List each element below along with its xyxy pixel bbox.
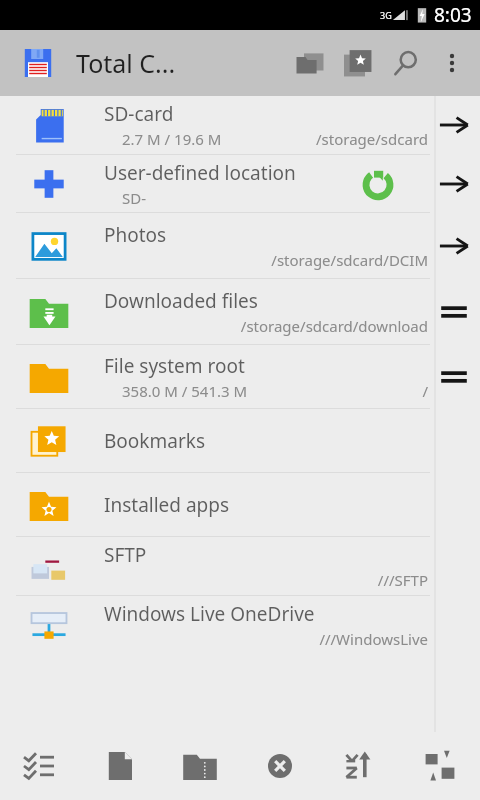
staticText: SD- (122, 188, 147, 208)
staticText: /storage/sdcard (316, 129, 428, 149)
staticText: Total C... (76, 46, 176, 80)
button[interactable]: Windows Live OneDrive (0, 596, 480, 654)
button[interactable]: More options (430, 41, 474, 85)
button[interactable]: Select (0, 732, 80, 800)
staticText: File system root (104, 353, 245, 379)
staticText: SFTP (104, 542, 147, 568)
button[interactable]: Sort (320, 732, 400, 800)
button[interactable]: Folders (286, 39, 334, 87)
staticText: 8:03 (434, 2, 472, 28)
staticText: Photos (104, 222, 167, 248)
button[interactable]: Installed apps (0, 473, 480, 536)
staticText: 3G (380, 9, 392, 21)
staticText: 2.7 M / 19.6 M (122, 129, 222, 149)
staticText: /storage/sdcard/DCIM (271, 250, 428, 270)
staticText: / (422, 381, 428, 401)
staticText: SD-card (104, 101, 174, 127)
staticText: Downloaded files (104, 288, 258, 314)
staticText: Bookmarks (104, 428, 206, 454)
button[interactable]: File system root (0, 345, 480, 408)
button[interactable]: User-defined location (0, 155, 480, 212)
staticText: 358.0 M / 541.3 M (122, 381, 248, 401)
staticText: ///SFTP (377, 570, 428, 590)
button[interactable]: Close (240, 732, 320, 800)
button[interactable]: Transfer (400, 732, 480, 800)
button[interactable]: Zip folder (160, 732, 240, 800)
staticText: ///WindowsLive (319, 629, 428, 649)
staticText: User-defined location (104, 160, 296, 186)
button[interactable]: Photos (0, 213, 480, 278)
button[interactable]: SFTP (0, 537, 480, 595)
button[interactable]: SD-card (0, 96, 480, 154)
staticText: Windows Live OneDrive (104, 601, 315, 627)
staticText: /storage/sdcard/download (240, 316, 428, 336)
staticText: Installed apps (104, 492, 230, 518)
button[interactable]: Bookmarks (0, 409, 480, 472)
button[interactable]: Bookmarks (334, 39, 382, 87)
button[interactable]: New file (80, 732, 160, 800)
button[interactable]: Downloaded files (0, 279, 480, 344)
button[interactable]: Search (382, 39, 430, 87)
